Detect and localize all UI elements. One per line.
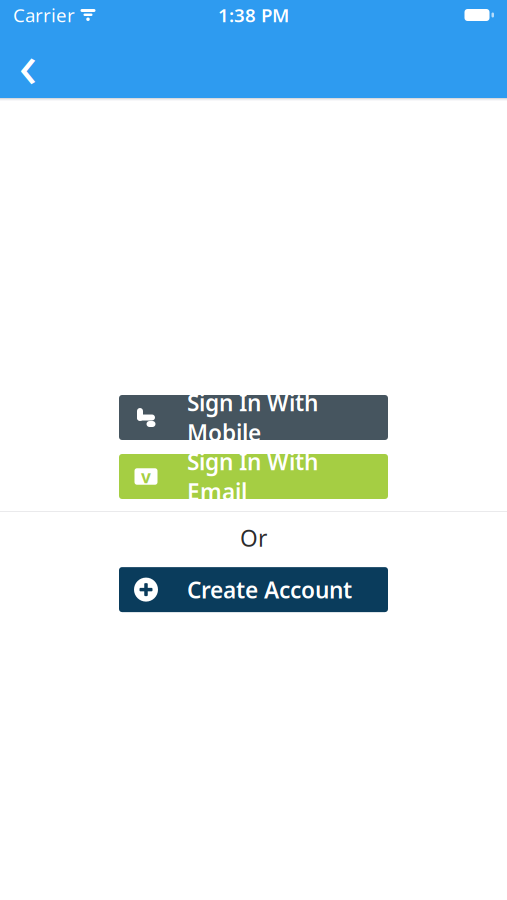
button[interactable]: v	[119, 454, 388, 499]
staticText: Sign In With Email	[187, 446, 318, 507]
button[interactable]: Create Account	[119, 567, 388, 612]
button[interactable]: Sign In With Mobile	[119, 395, 388, 440]
staticText: ‹	[18, 23, 37, 105]
staticText: Carrier	[13, 3, 75, 27]
staticText: Sign In With Mobile	[187, 387, 318, 448]
button[interactable]: Back	[0, 34, 56, 94]
staticText: v	[141, 465, 151, 488]
staticText: Or	[240, 523, 267, 553]
staticText: 1:38 PM	[218, 3, 289, 27]
staticText: Create Account	[187, 575, 352, 605]
